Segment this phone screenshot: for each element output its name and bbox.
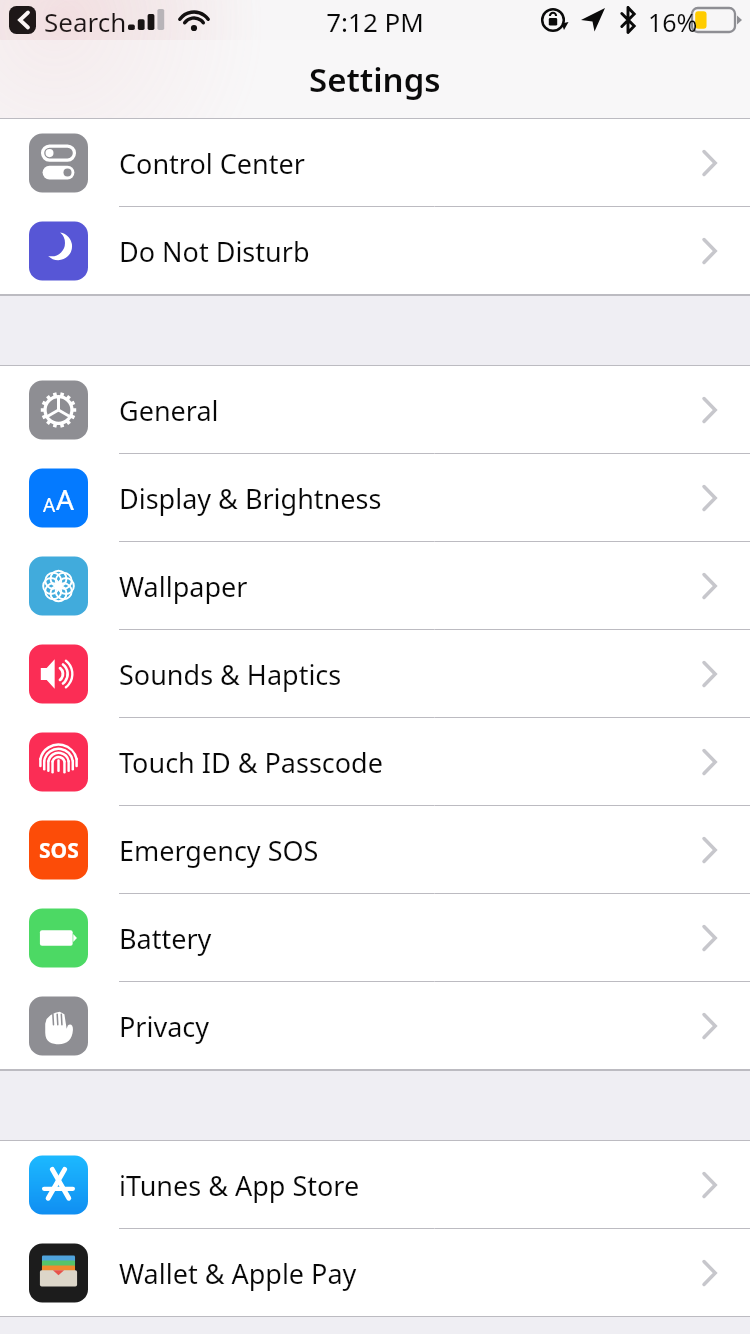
staticText: Emergency SOS [119,832,319,869]
staticText: Sounds & Haptics [119,656,342,693]
staticText: Display & Brightness [119,480,382,517]
staticText: General [119,392,219,429]
staticText: Search [44,4,127,39]
button[interactable]: SOS [0,806,750,894]
staticText: Control Center [119,145,305,182]
staticText: A [43,492,56,518]
staticText: Privacy [119,1008,210,1045]
button[interactable]: Privacy [0,982,750,1070]
button[interactable]: Control Center [0,119,750,207]
staticText: Do Not Disturb [119,233,310,270]
staticText: Battery [119,920,212,957]
staticText: Wallpaper [119,568,248,605]
staticText: Settings [309,57,441,102]
staticText: 16% [648,5,698,39]
staticText: Wallet & Apple Pay [119,1255,357,1292]
staticText: SOS [39,836,79,865]
button[interactable]: Sounds & Haptics [0,630,750,718]
staticText: A [56,480,74,518]
staticText: Touch ID & Passcode [119,744,383,781]
staticText: iTunes & App Store [119,1167,360,1204]
button[interactable]: Wallpaper [0,542,750,630]
button[interactable]: Touch ID & Passcode [0,718,750,806]
staticText: 7:12 PM [0,4,750,39]
button[interactable]: General [0,366,750,454]
button[interactable]: Do Not Disturb [0,207,750,295]
button[interactable]: iTunes & App Store [0,1141,750,1229]
button[interactable]: Battery [0,894,750,982]
button[interactable]: Wallet & Apple Pay [0,1229,750,1317]
button[interactable]: A [0,454,750,542]
